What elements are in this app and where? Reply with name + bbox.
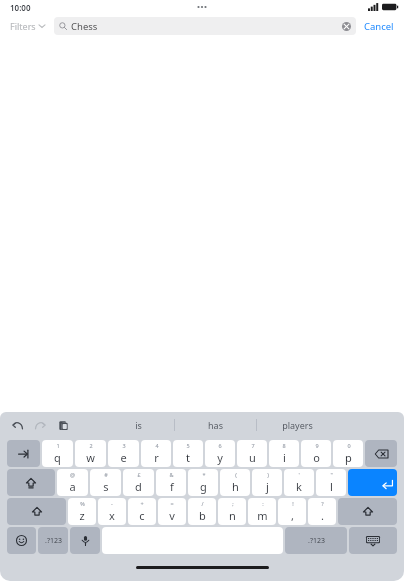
button[interactable]: Emoji [7, 527, 36, 554]
button[interactable]: 7 [237, 440, 267, 467]
button[interactable]: has [175, 412, 256, 438]
staticText: / [201, 500, 204, 507]
button[interactable]: Numbers [38, 527, 68, 554]
button[interactable]: Redo [32, 417, 48, 433]
staticText: z [79, 508, 85, 523]
staticText: = [170, 500, 174, 507]
button[interactable]: Dictation [70, 527, 100, 554]
staticText: 5 [186, 442, 190, 449]
button[interactable]: ( [220, 469, 250, 496]
button[interactable]: & [156, 469, 186, 496]
staticText: & [169, 471, 174, 478]
staticText: ; [232, 500, 234, 507]
button[interactable]: Backspace [365, 440, 397, 467]
button[interactable]: Hide keyboard [349, 527, 397, 554]
staticText: s [103, 479, 109, 494]
staticText: players [282, 419, 313, 431]
button[interactable]: ! [278, 498, 306, 525]
button[interactable]: Paste [55, 417, 71, 433]
staticText: # [104, 471, 108, 478]
button[interactable]: Caps lock [7, 469, 55, 496]
staticText: a [69, 479, 76, 494]
button[interactable]: Clear [341, 21, 351, 31]
button[interactable]: is [103, 412, 174, 438]
button[interactable]: Cancel [362, 16, 396, 37]
staticText: 4 [155, 442, 159, 449]
staticText: . [321, 508, 324, 523]
button[interactable]: Filters [8, 20, 47, 32]
staticText: : [262, 500, 264, 507]
staticText: f [170, 479, 174, 494]
button[interactable]: : [248, 498, 276, 525]
staticText: u [249, 450, 256, 465]
staticText: x [109, 508, 115, 523]
staticText: v [169, 508, 175, 523]
staticText: w [86, 450, 95, 465]
staticText: * [202, 471, 206, 478]
button[interactable]: + [128, 498, 156, 525]
staticText: 9 [315, 442, 319, 449]
staticText: - [111, 500, 113, 507]
staticText: 0 [347, 442, 351, 449]
staticText: q [54, 450, 61, 465]
staticText: g [200, 479, 207, 494]
button[interactable]: * [188, 469, 218, 496]
staticText: Cancel [364, 20, 394, 33]
staticText: n [229, 508, 236, 523]
staticText: is [135, 419, 142, 431]
staticText: 7 [251, 442, 255, 449]
button[interactable]: Shift [7, 498, 66, 525]
button[interactable]: £ [123, 469, 154, 496]
button[interactable]: 3 [108, 440, 139, 467]
staticText: i [283, 450, 286, 465]
staticText: ' [298, 471, 300, 478]
button[interactable]: # [90, 469, 121, 496]
staticText: % [80, 500, 85, 507]
staticText: £ [137, 471, 141, 478]
button[interactable]: 6 [205, 440, 235, 467]
button[interactable]: 8 [269, 440, 299, 467]
button[interactable]: 4 [141, 440, 171, 467]
staticText: ) [267, 471, 269, 478]
button[interactable]: 9 [301, 440, 331, 467]
button[interactable]: players [257, 412, 338, 438]
button[interactable]: Numbers right [285, 527, 347, 554]
staticText: 2 [89, 442, 93, 449]
staticText: k [296, 479, 302, 494]
button[interactable]: Return [348, 469, 397, 496]
staticText: has [208, 419, 223, 431]
button[interactable]: ' [284, 469, 314, 496]
button[interactable]: Shift right [338, 498, 397, 525]
staticText: c [139, 508, 145, 523]
button[interactable]: 5 [173, 440, 203, 467]
staticText: @ [70, 471, 75, 478]
staticText: p [345, 450, 352, 465]
button[interactable]: ) [252, 469, 282, 496]
button[interactable]: - [98, 498, 126, 525]
button[interactable]: ? [308, 498, 336, 525]
staticText: ? [321, 500, 324, 507]
button[interactable]: % [68, 498, 96, 525]
button[interactable]: Tab [7, 440, 40, 467]
staticText: 10:00 [10, 2, 31, 13]
button[interactable]: / [188, 498, 216, 525]
staticText: 1 [56, 442, 60, 449]
button[interactable]: ; [218, 498, 246, 525]
staticText: 6 [218, 442, 222, 449]
staticText: j [266, 479, 269, 494]
button[interactable]: 2 [75, 440, 106, 467]
button[interactable]: " [316, 469, 346, 496]
button[interactable]: Undo [9, 417, 25, 433]
staticText: , [291, 508, 294, 523]
button[interactable]: 0 [333, 440, 363, 467]
staticText: b [199, 508, 206, 523]
button[interactable]: Chess [54, 17, 356, 35]
staticText: " [330, 471, 333, 478]
staticText: m [257, 508, 268, 523]
button[interactable]: @ [57, 469, 88, 496]
button[interactable]: = [158, 498, 186, 525]
staticText: Chess [71, 20, 341, 33]
button[interactable]: 1 [42, 440, 73, 467]
staticText: ! [292, 500, 294, 507]
